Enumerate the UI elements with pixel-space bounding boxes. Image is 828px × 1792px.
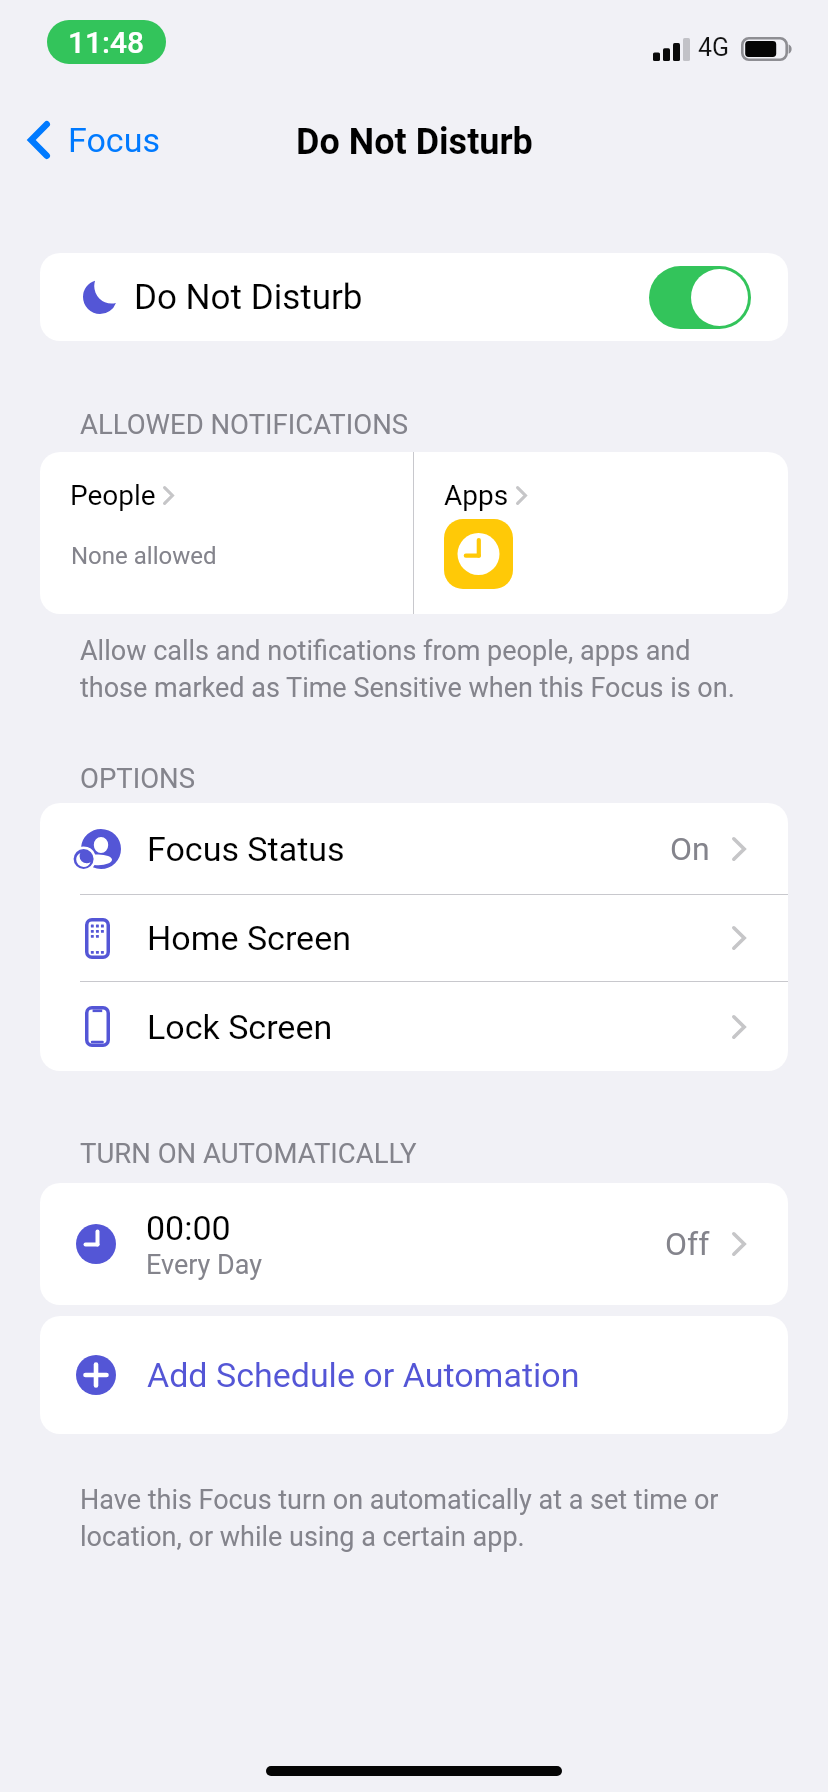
button[interactable]: 00:00: [40, 1183, 788, 1305]
button[interactable]: Focus Status: [40, 803, 788, 894]
staticText: 11:48: [68, 25, 145, 60]
staticText: TURN ON AUTOMATICALLY: [80, 1137, 417, 1169]
button[interactable]: Do Not Disturb: [40, 253, 788, 341]
button[interactable]: Add Schedule or Automation: [40, 1316, 788, 1434]
staticText: People: [70, 479, 156, 512]
staticText: Focus: [68, 120, 160, 160]
button[interactable]: Lock Screen: [40, 982, 788, 1071]
staticText: Off: [665, 1225, 710, 1263]
staticText: Add Schedule or Automation: [147, 1355, 580, 1395]
button[interactable]: Do Not Disturb on: [649, 266, 751, 329]
staticText: Allow calls and notifications from peopl…: [80, 635, 735, 703]
staticText: Focus Status: [147, 829, 345, 869]
staticText: 00:00: [146, 1208, 231, 1248]
staticText: Apps: [444, 479, 509, 512]
staticText: On: [670, 830, 710, 868]
staticText: Home Screen: [147, 918, 351, 958]
staticText: Every Day: [146, 1249, 263, 1281]
button[interactable]: Back to Focus: [18, 112, 172, 168]
button[interactable]: Apps: [414, 452, 788, 614]
button[interactable]: Home Screen: [40, 895, 788, 981]
staticText: ALLOWED NOTIFICATIONS: [80, 408, 409, 440]
staticText: Do Not Disturb: [134, 277, 363, 318]
staticText: Lock Screen: [147, 1007, 333, 1047]
button[interactable]: People: [40, 452, 413, 614]
staticText: Do Not Disturb: [296, 121, 533, 163]
staticText: 4G: [698, 33, 730, 62]
staticText: OPTIONS: [80, 762, 196, 794]
staticText: Have this Focus turn on automatically at…: [80, 1484, 719, 1552]
staticText: None allowed: [71, 542, 217, 570]
